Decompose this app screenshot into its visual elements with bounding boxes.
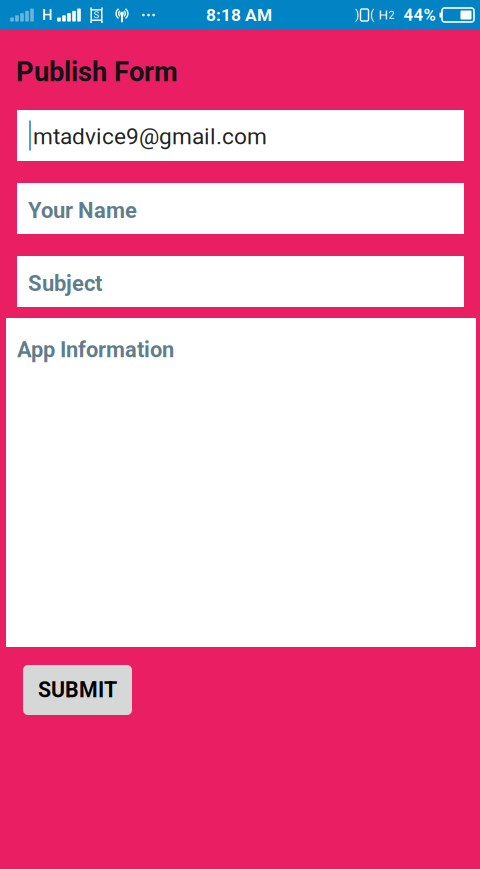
staticText: ( <box>370 8 374 22</box>
staticText: mtadvice9@gmail.com <box>33 123 267 150</box>
button[interactable]: Your Name <box>17 183 464 234</box>
staticText: 8:18 AM <box>206 5 272 25</box>
staticText: SUBMIT <box>38 677 117 702</box>
staticText: H <box>378 7 388 23</box>
button[interactable]: App Information <box>6 318 476 647</box>
staticText: Publish Form <box>16 56 178 88</box>
button[interactable]: mtadvice9@gmail.com <box>17 110 464 161</box>
staticText: H <box>42 6 52 24</box>
staticText: ) <box>355 8 359 22</box>
staticText: Your Name <box>28 198 137 223</box>
button[interactable]: SUBMIT <box>23 665 132 715</box>
staticText: S <box>93 9 99 20</box>
staticText: Subject <box>28 271 102 296</box>
staticText: 2 <box>388 9 394 21</box>
staticText: App Information <box>17 337 174 363</box>
staticText: 44% <box>403 5 435 25</box>
button[interactable]: Subject <box>17 256 464 307</box>
